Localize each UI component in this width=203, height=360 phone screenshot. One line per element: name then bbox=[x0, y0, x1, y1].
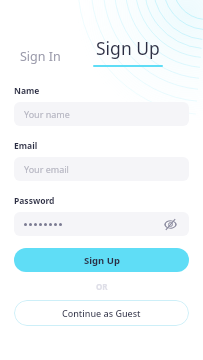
staticText: Email bbox=[14, 140, 38, 152]
staticText: Sign In bbox=[20, 48, 61, 65]
staticText: Your email bbox=[24, 163, 69, 175]
button[interactable]: Sign In bbox=[14, 46, 67, 67]
staticText: Continue as Guest bbox=[62, 307, 141, 319]
staticText: Password bbox=[14, 195, 55, 207]
button[interactable]: Sign Up bbox=[14, 248, 189, 272]
button[interactable]: Show password bbox=[161, 215, 179, 233]
staticText: Sign Up bbox=[96, 36, 160, 60]
staticText: OR bbox=[96, 281, 108, 292]
staticText: Your name bbox=[24, 108, 70, 120]
button[interactable]: Show password bbox=[14, 212, 189, 236]
button[interactable]: Continue as Guest bbox=[14, 300, 189, 326]
button[interactable]: Sign Up bbox=[93, 36, 163, 67]
button[interactable]: Your email bbox=[14, 157, 189, 181]
staticText: Name bbox=[14, 85, 40, 97]
button[interactable]: Your name bbox=[14, 102, 189, 126]
staticText: Sign Up bbox=[84, 254, 120, 267]
